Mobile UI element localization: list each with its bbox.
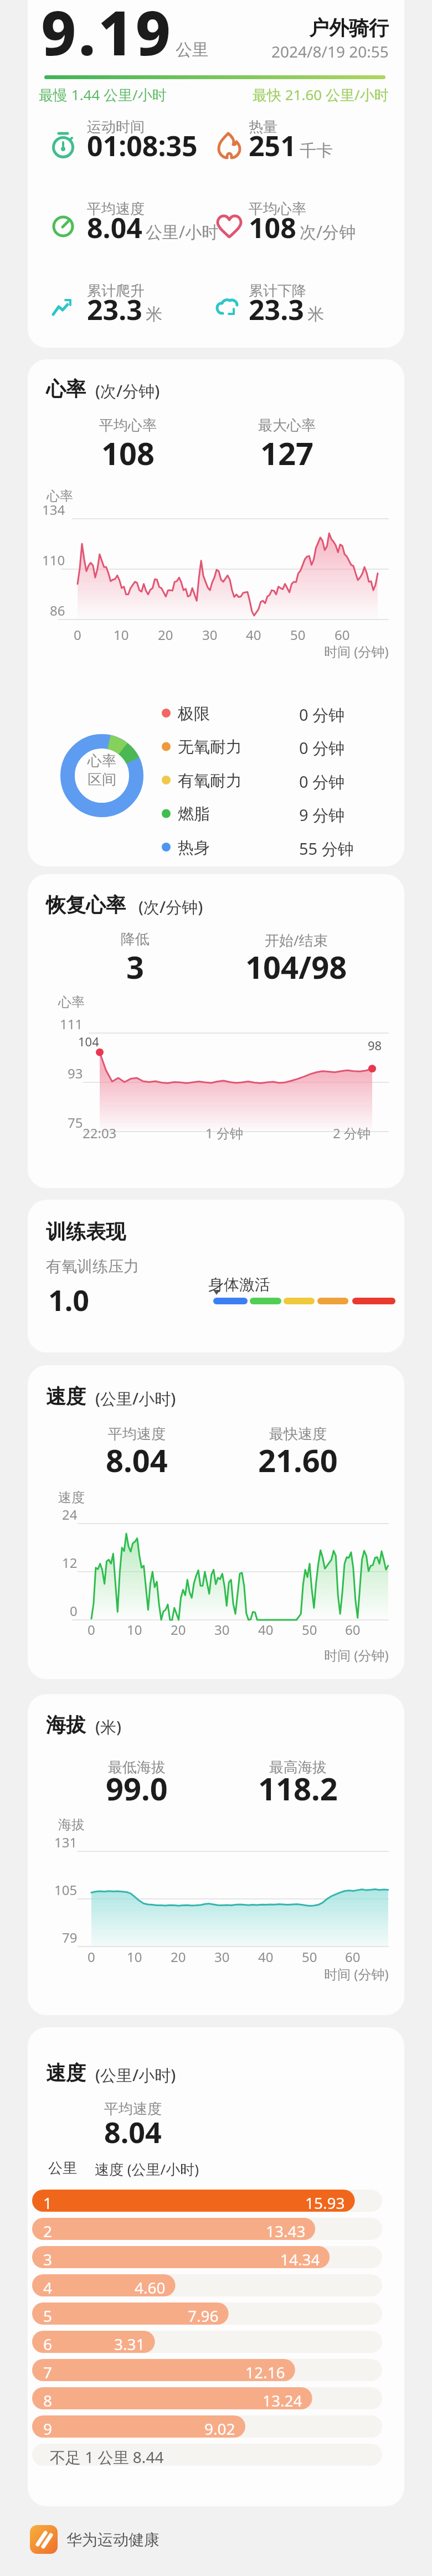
staticText: 0	[74, 626, 81, 644]
staticText: 4	[43, 2277, 53, 2298]
staticText: 最高海拔	[269, 1758, 327, 1777]
staticText: 速度	[58, 1489, 85, 1506]
staticText: 海拔	[58, 1816, 85, 1833]
staticText: 最快速度	[269, 1425, 327, 1443]
staticText: 12	[62, 1553, 78, 1572]
button[interactable]	[28, 874, 404, 1188]
staticText: 9 分钟	[299, 804, 345, 826]
staticText: 6	[43, 2334, 53, 2355]
staticText: 22:03	[83, 1124, 117, 1142]
staticText: 有氧耐力	[178, 771, 242, 791]
staticText: 米	[307, 304, 324, 325]
staticText: 无氧耐力	[178, 737, 242, 757]
staticText: 公里/小时	[146, 220, 219, 243]
staticText: 110	[42, 551, 65, 569]
staticText: 10	[127, 1620, 142, 1639]
staticText: 134	[42, 500, 65, 519]
staticText: 12.16	[245, 2362, 285, 2383]
staticText: 40	[258, 1620, 274, 1639]
staticText: 0	[88, 1948, 95, 1966]
staticText: 米	[146, 304, 162, 325]
staticText: 8.04	[106, 1439, 168, 1481]
staticText: 累计爬升	[87, 282, 145, 300]
staticText: 平均速度	[104, 2100, 162, 2118]
staticText: 身体激活	[208, 1275, 270, 1294]
staticText: 7.96	[188, 2305, 219, 2326]
staticText: (次/分钟)	[138, 896, 203, 918]
staticText: 次/分钟	[300, 220, 356, 243]
staticText: 13.24	[263, 2390, 302, 2411]
staticText: 40	[246, 626, 261, 644]
staticText: (次/分钟)	[95, 380, 160, 402]
staticText: 平均速度	[87, 200, 145, 218]
staticText: 60	[335, 626, 350, 644]
staticText: 4.60	[135, 2277, 166, 2298]
staticText: 40	[258, 1948, 274, 1966]
staticText: 118.2	[258, 1767, 338, 1809]
staticText: 极限	[178, 704, 210, 724]
button[interactable]	[28, 0, 404, 348]
staticText: 8	[43, 2390, 53, 2411]
staticText: 海拔	[46, 1712, 86, 1737]
staticText: 50	[290, 626, 306, 644]
button[interactable]: 华为运动健康	[30, 2525, 160, 2554]
staticText: 公里	[176, 39, 209, 60]
staticText: 55 分钟	[299, 838, 354, 860]
staticText: 99.0	[106, 1767, 168, 1809]
staticText: 热身	[178, 838, 210, 858]
staticText: 10	[114, 626, 129, 644]
staticText: 75	[68, 1113, 83, 1132]
button[interactable]	[28, 359, 404, 866]
staticText: 心率	[88, 752, 116, 770]
staticText: 户外骑行	[309, 16, 389, 40]
staticText: 有氧训练压力	[46, 1257, 139, 1276]
staticText: 心率	[46, 376, 86, 401]
staticText: 21.60	[258, 1439, 338, 1481]
staticText: 3.31	[114, 2334, 145, 2355]
staticText: 105	[54, 1881, 78, 1899]
staticText: 9.02	[204, 2418, 235, 2439]
staticText: 23.3	[249, 291, 304, 328]
staticText: 13.43	[266, 2221, 306, 2242]
staticText: 30	[202, 626, 218, 644]
staticText: 不足 1 公里 8.44	[50, 2446, 164, 2467]
staticText: 24	[62, 1505, 78, 1524]
staticText: (米)	[95, 1716, 122, 1738]
staticText: 7	[43, 2362, 53, 2383]
staticText: 最快 21.60 公里/小时	[253, 85, 389, 105]
staticText: 速度	[46, 1384, 86, 1409]
staticText: 开始/结束	[265, 930, 328, 950]
staticText: 最低海拔	[108, 1758, 166, 1777]
staticText: 0 分钟	[299, 704, 345, 726]
staticText: 时间 (分钟)	[324, 1646, 389, 1664]
staticText: (公里/小时)	[95, 1387, 176, 1410]
staticText: 平均心率	[99, 416, 157, 435]
staticText: 3	[43, 2249, 53, 2270]
staticText: 速度	[46, 2061, 86, 2085]
staticText: 公里	[48, 2159, 77, 2177]
staticText: 恢复心率	[46, 892, 126, 917]
staticText: 93	[68, 1064, 83, 1082]
staticText: 8.04	[87, 209, 142, 246]
staticText: 燃脂	[178, 804, 210, 824]
button[interactable]	[28, 2027, 404, 2506]
staticText: 最大心率	[258, 416, 316, 435]
staticText: 104	[78, 1033, 99, 1050]
button[interactable]	[28, 1694, 404, 2015]
staticText: 251	[249, 127, 296, 164]
staticText: 心率	[58, 994, 85, 1010]
button[interactable]	[28, 1200, 404, 1352]
staticText: 训练表现	[46, 1219, 126, 1244]
staticText: 79	[62, 1928, 78, 1947]
staticText: 60	[345, 1948, 361, 1966]
staticText: 平均速度	[108, 1425, 166, 1443]
staticText: 8.04	[104, 2112, 162, 2151]
staticText: 131	[54, 1833, 78, 1851]
button[interactable]	[28, 1365, 404, 1679]
staticText: 热量	[249, 118, 277, 136]
staticText: 2	[43, 2221, 53, 2242]
staticText: 0	[70, 1602, 78, 1620]
staticText: 20	[171, 1948, 186, 1966]
staticText: 0 分钟	[299, 771, 345, 793]
staticText: 1	[43, 2192, 53, 2213]
